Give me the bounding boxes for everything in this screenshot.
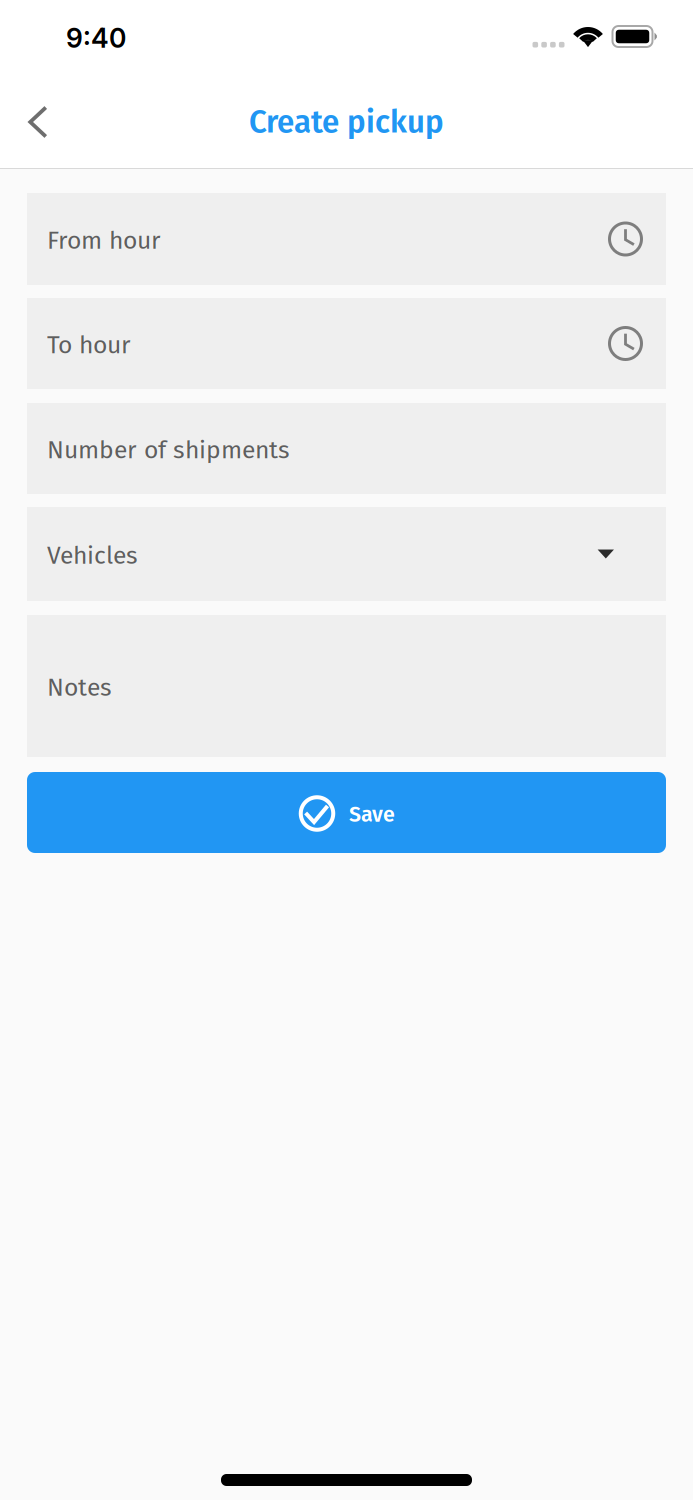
staticText: Number of shipments	[47, 435, 290, 465]
staticText: To hour	[47, 330, 131, 360]
button[interactable]: From hour	[27, 193, 666, 285]
button[interactable]: To hour	[27, 298, 666, 389]
staticText: Create pickup	[249, 103, 444, 141]
staticText: Save	[349, 802, 395, 827]
button[interactable]: Vehicles	[27, 507, 666, 601]
staticText: Notes	[47, 673, 112, 702]
staticText: 9:40	[66, 22, 126, 54]
staticText: Vehicles	[47, 541, 138, 570]
button[interactable]: Back	[9, 91, 67, 153]
staticText: From hour	[47, 226, 161, 255]
button[interactable]: Save	[27, 772, 666, 853]
